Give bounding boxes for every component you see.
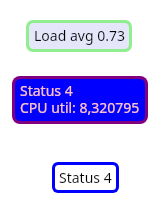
staticText: Status 4 CPU util: 8,320795 (20, 81, 140, 117)
staticText: Load avg 0.73 (34, 26, 125, 45)
button[interactable]: Status 4 CPU util: 8,320795 (12, 76, 148, 124)
staticText: Status 4 (59, 168, 112, 187)
button[interactable]: Load avg 0.73 (26, 20, 132, 52)
button[interactable]: Status 4 (52, 162, 119, 193)
